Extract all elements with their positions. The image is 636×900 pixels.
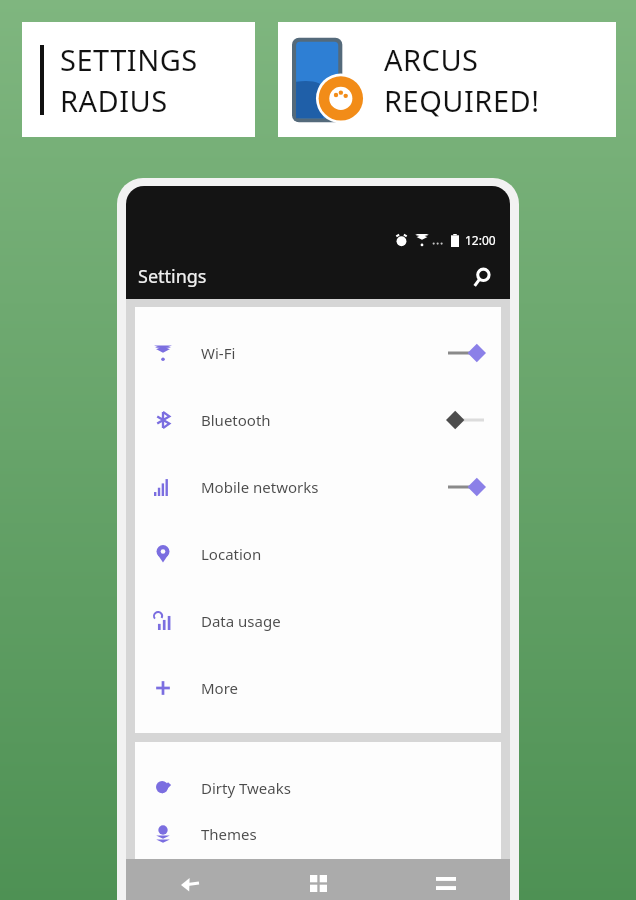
button[interactable]: Themes — [135, 821, 501, 847]
staticText: Themes — [201, 824, 257, 844]
button[interactable]: SETTINGS — [22, 22, 255, 137]
staticText: Location — [201, 544, 262, 564]
staticText: Dirty Tweaks — [201, 778, 291, 798]
staticText: Bluetooth — [201, 410, 271, 430]
button[interactable]: Recents — [382, 859, 510, 900]
staticText: RADIUS — [60, 81, 168, 120]
other: Arcus app icon — [292, 34, 366, 126]
staticText: Wi-Fi — [201, 343, 236, 363]
button[interactable]: Wi-Fi — [135, 319, 501, 386]
button[interactable]: Search — [466, 262, 496, 292]
staticText: REQUIRED! — [384, 81, 540, 120]
button[interactable]: Bluetooth — [135, 386, 501, 453]
button[interactable]: Arcus app icon — [278, 22, 616, 137]
button[interactable]: Home — [254, 859, 382, 900]
staticText: Settings — [138, 264, 207, 289]
button[interactable]: Location — [135, 520, 501, 587]
staticText: More — [201, 678, 239, 698]
button[interactable]: Data usage — [135, 587, 501, 654]
button[interactable]: Back — [126, 859, 254, 900]
staticText: ARCUS — [384, 40, 479, 79]
button[interactable]: Dirty Tweaks — [135, 754, 501, 821]
staticText: 12:00 — [465, 232, 496, 248]
staticText: Data usage — [201, 611, 281, 631]
button[interactable]: Mobile networks — [135, 453, 501, 520]
staticText: Mobile networks — [201, 477, 319, 497]
staticText: SETTINGS — [60, 40, 198, 79]
button[interactable]: More — [135, 654, 501, 721]
